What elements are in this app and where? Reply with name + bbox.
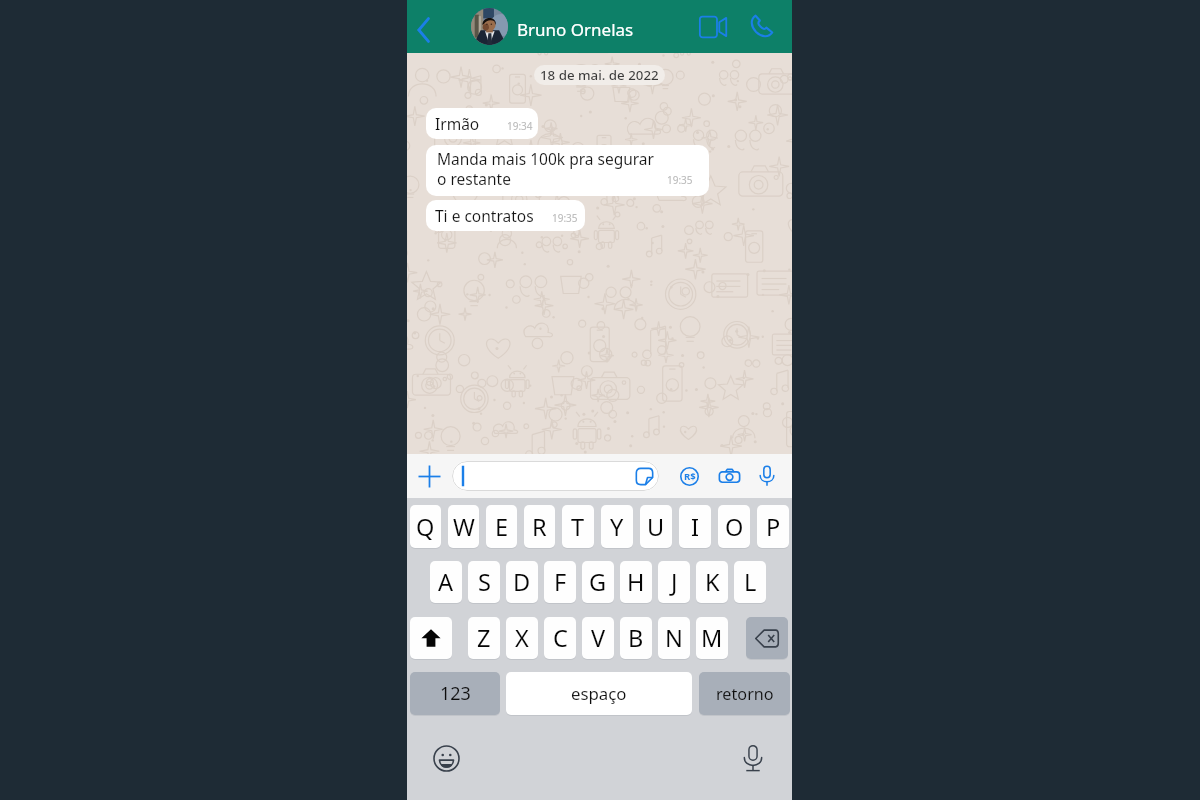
- button[interactable]: Camera: [709, 454, 749, 498]
- staticText: D: [513, 566, 531, 598]
- button[interactable]: X: [506, 617, 538, 659]
- staticText: J: [671, 566, 678, 598]
- button[interactable]: V: [582, 617, 614, 659]
- button[interactable]: Dictation: [735, 740, 771, 776]
- staticText: R$: [684, 470, 696, 483]
- staticText: A: [438, 566, 454, 598]
- staticText: 19:35: [552, 211, 578, 225]
- button[interactable]: Voice message: [747, 454, 787, 498]
- button[interactable]: retorno: [699, 672, 790, 715]
- button[interactable]: Profile photo: [471, 8, 508, 45]
- button[interactable]: Attach: [407, 454, 451, 498]
- staticText: 19:34: [507, 119, 533, 133]
- staticText: Y: [610, 511, 624, 543]
- staticText: L: [744, 566, 757, 598]
- button[interactable]: P: [757, 505, 789, 548]
- staticText: espaço: [571, 682, 627, 705]
- staticText: Q: [416, 511, 435, 543]
- button[interactable]: I: [679, 505, 711, 548]
- button[interactable]: J: [658, 561, 690, 603]
- staticText: B: [628, 622, 644, 654]
- button[interactable]: Backspace: [746, 617, 788, 659]
- button[interactable]: M: [696, 617, 728, 659]
- button[interactable]: A: [430, 561, 462, 603]
- staticText: retorno: [716, 683, 774, 705]
- staticText: Z: [477, 622, 491, 654]
- button[interactable]: O: [718, 505, 750, 548]
- staticText: I: [691, 511, 699, 543]
- staticText: Manda mais 100k pra segurar o restante: [437, 148, 654, 190]
- staticText: Ti e contratos: [435, 205, 534, 226]
- button[interactable]: N: [658, 617, 690, 659]
- staticText: U: [647, 511, 665, 543]
- button[interactable]: Q: [410, 505, 441, 548]
- staticText: K: [705, 566, 720, 598]
- staticText: M: [701, 622, 723, 654]
- button[interactable]: Back: [403, 0, 443, 53]
- button[interactable]: Z: [468, 617, 500, 659]
- button[interactable]: Manda mais 100k pra segurar o restante: [426, 145, 709, 196]
- staticText: 18 de mai. de 2022: [540, 66, 659, 84]
- button[interactable]: Stickers: [631, 463, 657, 489]
- staticText: H: [627, 566, 645, 598]
- staticText: V: [591, 622, 606, 654]
- button[interactable]: C: [544, 617, 576, 659]
- staticText: C: [553, 622, 568, 654]
- button[interactable]: 18 de mai. de 2022: [534, 65, 665, 85]
- staticText: S: [478, 566, 491, 598]
- staticText: O: [725, 511, 744, 543]
- staticText: P: [766, 511, 781, 543]
- button[interactable]: H: [620, 561, 652, 603]
- staticText: X: [515, 622, 529, 654]
- button[interactable]: Voice call: [738, 0, 784, 53]
- button[interactable]: Irmão: [426, 108, 538, 139]
- button[interactable]: D: [506, 561, 538, 603]
- staticText: Bruno Ornelas: [517, 18, 634, 41]
- button[interactable]: B: [620, 617, 652, 659]
- staticText: R: [532, 511, 547, 543]
- button[interactable]: espaço: [506, 672, 692, 715]
- staticText: W: [453, 511, 475, 543]
- staticText: N: [665, 622, 683, 654]
- staticText: 19:35: [667, 173, 693, 187]
- button[interactable]: K: [696, 561, 728, 603]
- button[interactable]: Message input: [452, 461, 659, 491]
- button[interactable]: Ti e contratos: [426, 200, 585, 231]
- staticText: E: [495, 511, 509, 543]
- button[interactable]: L: [734, 561, 766, 603]
- button[interactable]: W: [448, 505, 479, 548]
- button[interactable]: Shift: [410, 617, 452, 659]
- staticText: Irmão: [435, 113, 480, 134]
- button[interactable]: R: [524, 505, 555, 548]
- button[interactable]: U: [640, 505, 672, 548]
- staticText: T: [571, 511, 585, 543]
- staticText: F: [554, 566, 567, 598]
- staticText: G: [589, 566, 607, 598]
- button[interactable]: T: [562, 505, 594, 548]
- button[interactable]: G: [582, 561, 614, 603]
- button[interactable]: 123: [410, 672, 500, 715]
- button[interactable]: E: [486, 505, 517, 548]
- button[interactable]: S: [468, 561, 500, 603]
- button[interactable]: Y: [601, 505, 633, 548]
- button[interactable]: Video call: [691, 0, 736, 53]
- staticText: 123: [440, 681, 471, 706]
- button[interactable]: F: [544, 561, 576, 603]
- button[interactable]: Payment: [669, 454, 709, 498]
- button[interactable]: Emoji: [428, 740, 464, 776]
